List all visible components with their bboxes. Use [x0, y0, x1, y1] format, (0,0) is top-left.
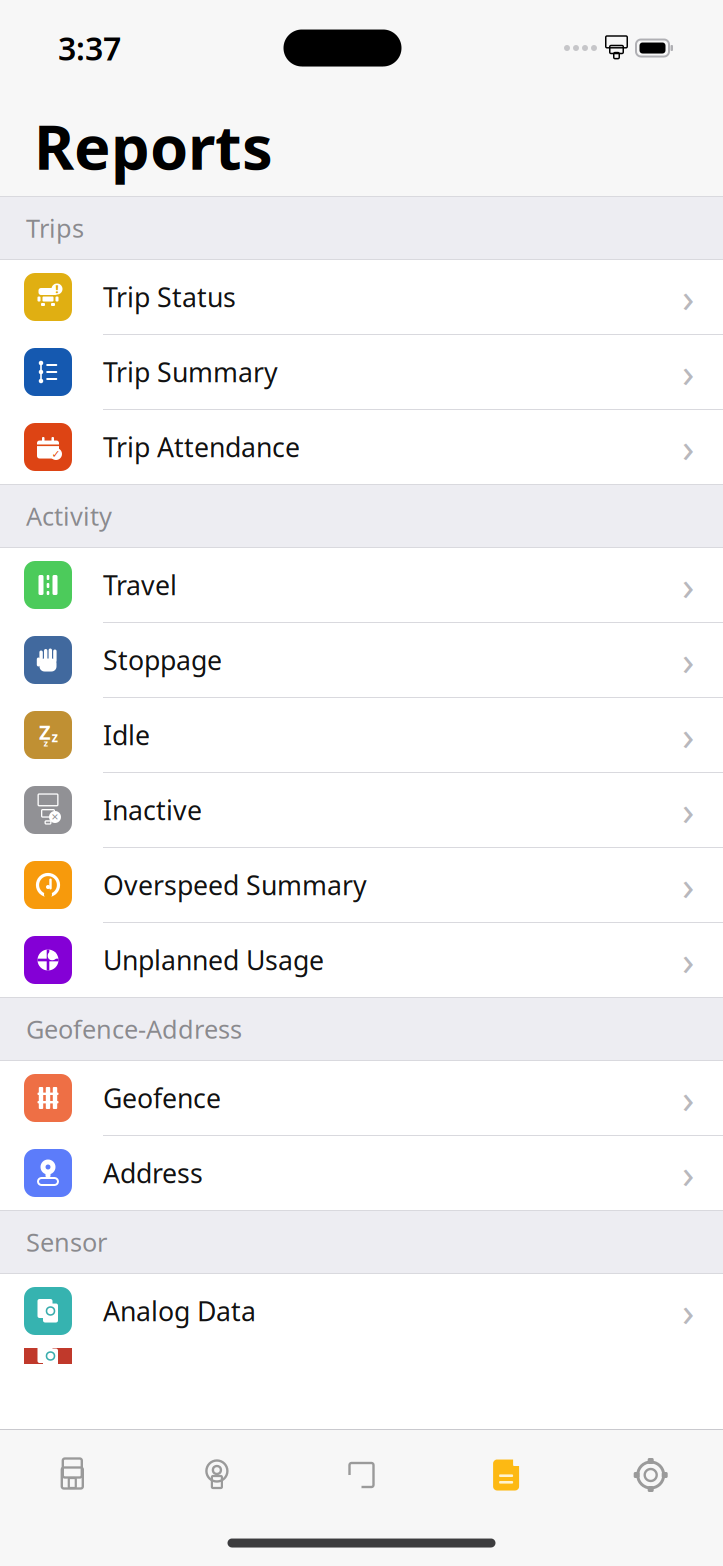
- staticText: Activity: [26, 499, 112, 533]
- staticText: ›: [682, 558, 694, 611]
- staticText: ✕: [51, 812, 59, 822]
- button[interactable]: Trip Summary: [0, 335, 723, 410]
- staticText: Travel: [103, 567, 177, 603]
- button[interactable]: !: [0, 260, 723, 335]
- staticText: Geofence-Address: [26, 1012, 242, 1046]
- staticText: Idle: [103, 717, 150, 753]
- button[interactable]: Overspeed Summary: [0, 848, 723, 923]
- staticText: ›: [682, 345, 694, 398]
- staticText: z: [51, 728, 58, 746]
- staticText: ›: [682, 270, 694, 323]
- button[interactable]: Settings: [578, 1430, 723, 1520]
- staticText: Trips: [26, 211, 84, 245]
- button[interactable]: Unplanned Usage: [0, 923, 723, 997]
- staticText: Trip Attendance: [103, 429, 300, 465]
- staticText: Geofence: [103, 1080, 221, 1116]
- button[interactable]: Address: [0, 1136, 723, 1210]
- staticText: Inactive: [103, 792, 202, 828]
- staticText: Trip Summary: [103, 354, 278, 390]
- button[interactable]: Z: [0, 698, 723, 773]
- staticText: ›: [682, 858, 694, 911]
- staticText: ›: [682, 1146, 694, 1199]
- staticText: ›: [682, 1071, 694, 1124]
- staticText: Analog Data: [103, 1293, 256, 1329]
- button[interactable]: Places: [145, 1430, 289, 1520]
- staticText: Overspeed Summary: [103, 867, 367, 903]
- staticText: ›: [682, 420, 694, 473]
- staticText: Trip Status: [103, 279, 236, 315]
- staticText: Z: [39, 719, 51, 745]
- staticText: ›: [682, 1284, 694, 1337]
- staticText: Address: [103, 1155, 203, 1191]
- staticText: z: [43, 737, 48, 749]
- staticText: Sensor: [26, 1225, 107, 1259]
- button[interactable]: ✓: [0, 410, 723, 484]
- staticText: Stoppage: [103, 642, 222, 678]
- button[interactable]: Geofence: [0, 1061, 723, 1136]
- staticText: ›: [682, 933, 694, 986]
- button[interactable]: Analog Data: [0, 1274, 723, 1348]
- button[interactable]: Stoppage: [0, 623, 723, 698]
- button[interactable]: Home: [0, 1430, 145, 1520]
- staticText: !: [55, 282, 58, 296]
- staticText: ›: [682, 633, 694, 686]
- staticText: Reports: [34, 105, 273, 187]
- button[interactable]: Travel: [0, 548, 723, 623]
- staticText: ›: [682, 783, 694, 836]
- button[interactable]: ✕: [0, 773, 723, 848]
- staticText: Unplanned Usage: [103, 942, 324, 978]
- staticText: ✓: [51, 448, 60, 460]
- staticText: ›: [682, 708, 694, 761]
- button[interactable]: Reports: [434, 1430, 578, 1520]
- button[interactable]: Track: [289, 1430, 434, 1520]
- staticText: 3:37: [58, 27, 121, 69]
